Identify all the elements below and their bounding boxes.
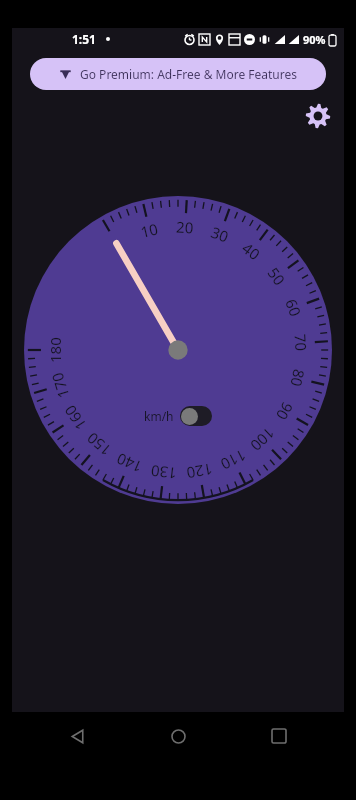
button[interactable]: Speedometer gauge: [24, 196, 332, 504]
staticText: km/h: [144, 408, 174, 424]
button[interactable]: Recent apps: [255, 712, 303, 760]
staticText: 90%: [303, 32, 326, 47]
button[interactable]: Go Premium: Ad-Free & More Features: [30, 58, 326, 90]
button[interactable]: Settings: [298, 96, 338, 136]
staticText: Go Premium: Ad-Free & More Features: [80, 66, 298, 82]
button[interactable]: Toggle units: [180, 406, 212, 426]
button[interactable]: Home: [154, 712, 202, 760]
staticText: 1:51: [72, 31, 96, 47]
button[interactable]: Back: [53, 712, 101, 760]
